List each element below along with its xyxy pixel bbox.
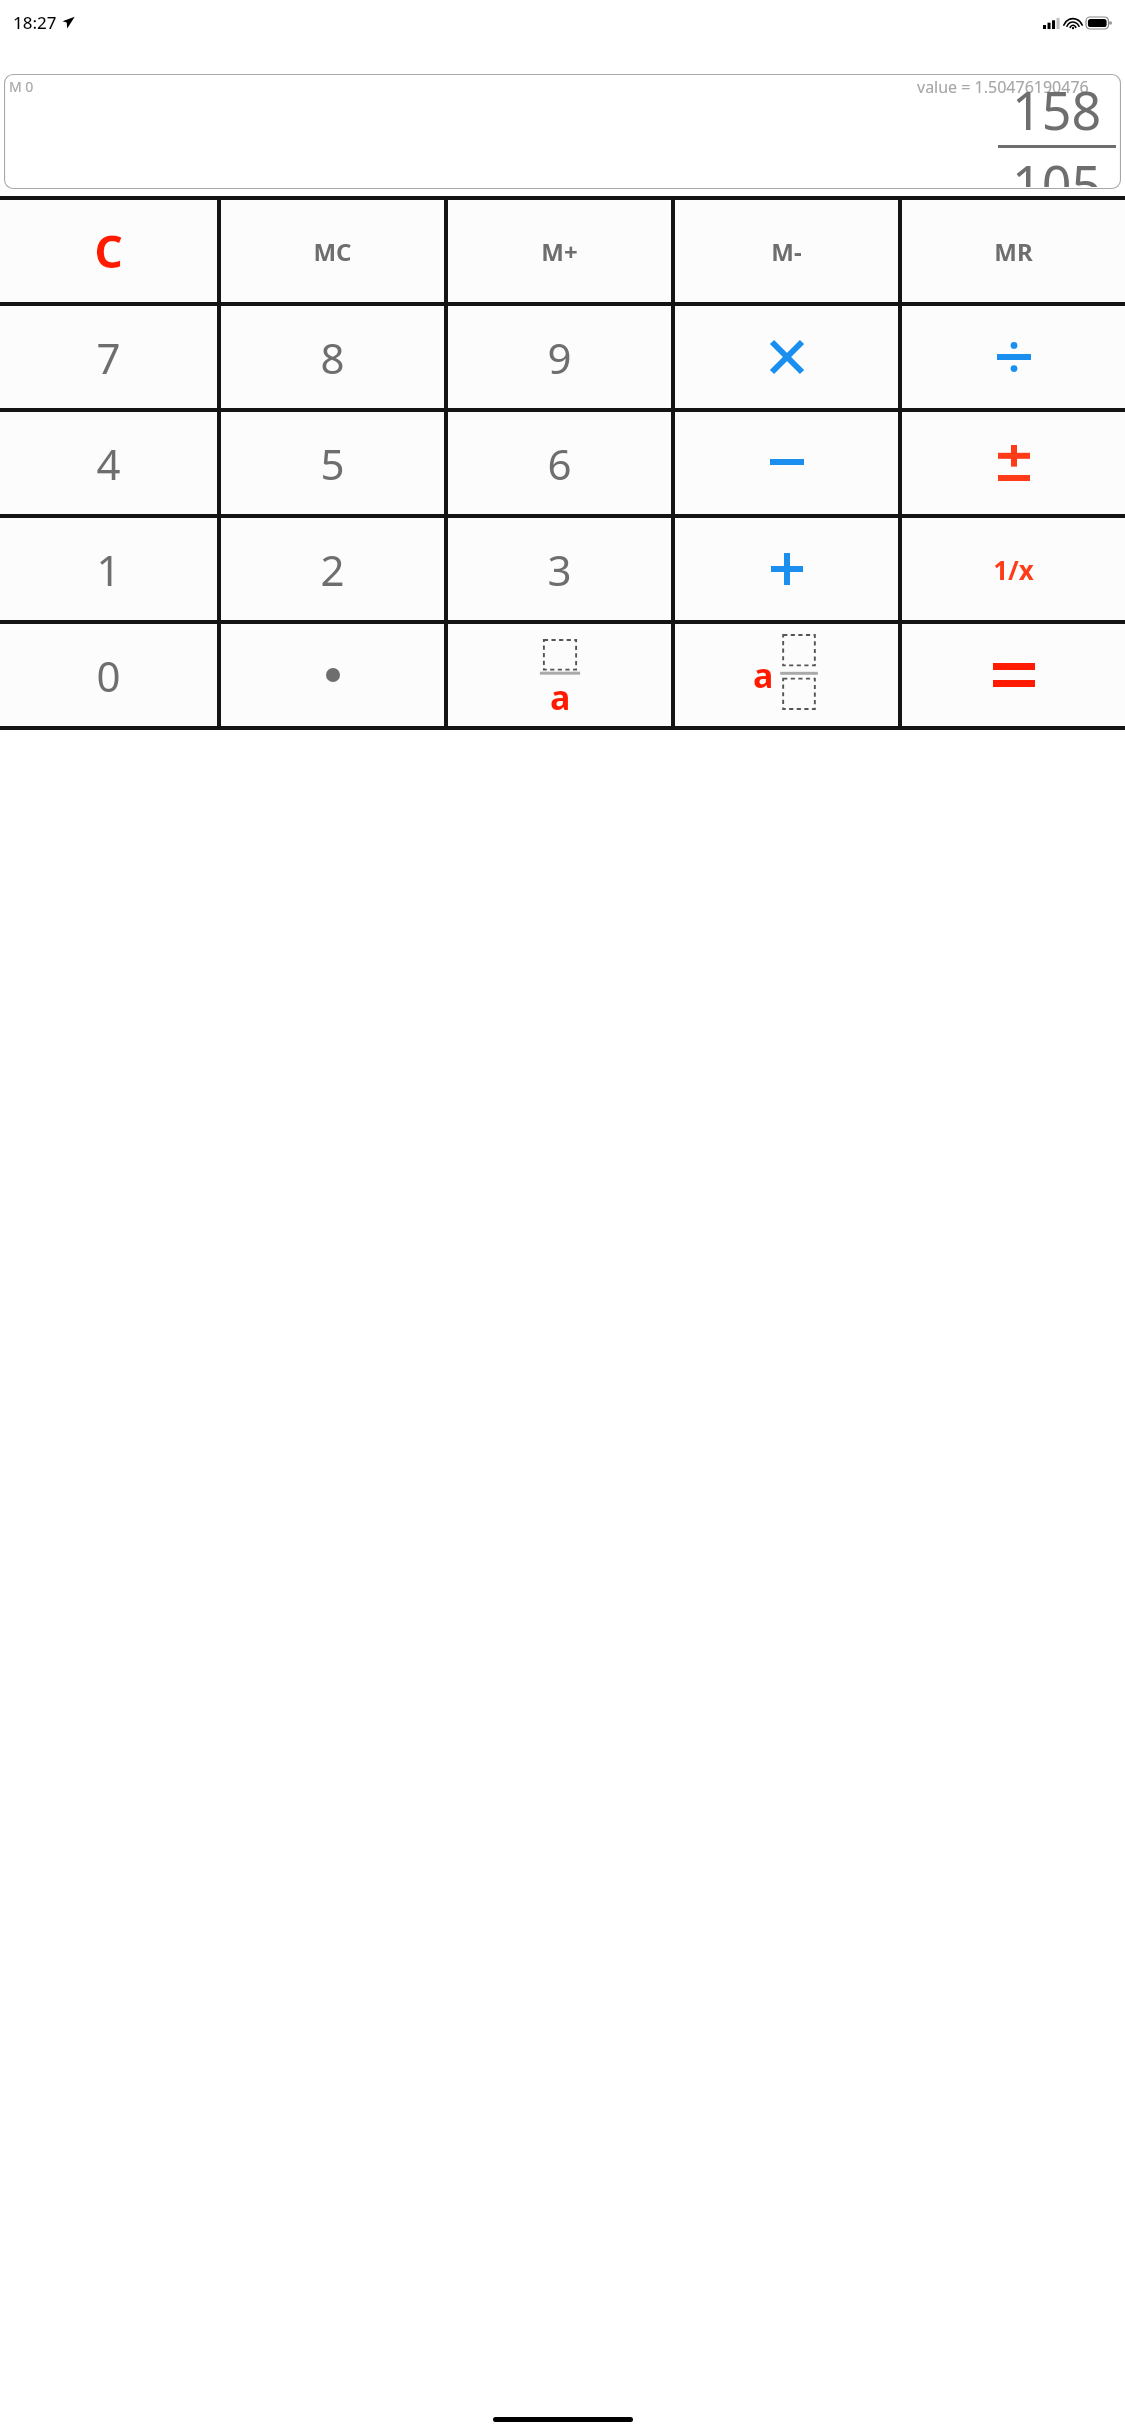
button[interactable]: 1/x (902, 518, 1125, 620)
staticText: MR (994, 235, 1033, 268)
button[interactable]: 9 (448, 306, 671, 408)
button[interactable]: 5 (221, 412, 444, 514)
button[interactable]: Equals (902, 624, 1125, 726)
button[interactable]: C (0, 200, 217, 302)
staticText: 158 (1012, 74, 1102, 145)
staticText: 4 (96, 435, 121, 492)
staticText: M 0 (9, 77, 34, 96)
staticText: 5 (320, 435, 345, 492)
staticText: 6 (547, 435, 572, 492)
staticText: a (753, 652, 774, 698)
button[interactable]: Plus minus sign (902, 412, 1125, 514)
button[interactable]: 3 (448, 518, 671, 620)
button[interactable]: Minus (675, 412, 898, 514)
button[interactable]: 6 (448, 412, 671, 514)
button[interactable]: 7 (0, 306, 217, 408)
staticText: M+ (541, 235, 578, 268)
staticText: 1 (96, 541, 121, 598)
staticText: 2 (320, 541, 345, 598)
button[interactable]: Divide (902, 306, 1125, 408)
staticText: 1/x (993, 552, 1034, 587)
button[interactable]: MR (902, 200, 1125, 302)
staticText: a (550, 674, 571, 720)
staticText: 9 (547, 329, 572, 386)
button[interactable]: Mixed fraction (675, 624, 898, 726)
staticText: MC (313, 235, 352, 268)
staticText: 0 (96, 647, 121, 704)
staticText: value = 1.50476190476 (917, 76, 1089, 98)
button[interactable]: M+ (448, 200, 671, 302)
button[interactable]: Decimal point (221, 624, 444, 726)
staticText: 3 (547, 541, 572, 598)
button[interactable]: MC (221, 200, 444, 302)
button[interactable]: 1 (0, 518, 217, 620)
button[interactable]: 2 (221, 518, 444, 620)
button[interactable]: 4 (0, 412, 217, 514)
button[interactable]: Plus (675, 518, 898, 620)
staticText: C (94, 221, 123, 281)
staticText: M- (771, 235, 802, 268)
button[interactable]: 8 (221, 306, 444, 408)
button[interactable]: Multiply (675, 306, 898, 408)
button[interactable]: 0 (0, 624, 217, 726)
staticText: 105 (1012, 148, 1102, 187)
staticText: 18:27 (13, 11, 57, 34)
staticText: 7 (96, 329, 121, 386)
button[interactable]: Fraction (448, 624, 671, 726)
button[interactable]: M- (675, 200, 898, 302)
staticText: 8 (320, 329, 345, 386)
